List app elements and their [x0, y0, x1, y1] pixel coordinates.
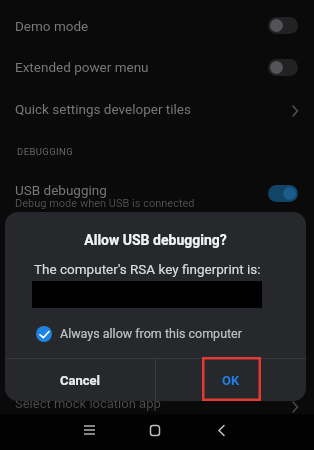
button[interactable]	[36, 326, 52, 342]
button[interactable]: Quick settings developer tiles	[15, 101, 191, 117]
staticText: Always allow from this computer	[60, 326, 242, 341]
staticText: Debug mode when USB is connected	[15, 197, 195, 210]
button[interactable]	[218, 425, 225, 436]
staticText: Cancel	[60, 373, 101, 388]
button[interactable]	[150, 425, 160, 436]
button[interactable]	[268, 185, 298, 202]
staticText: DEBUGGING	[17, 146, 74, 157]
button[interactable]: Cancel	[5, 359, 155, 401]
staticText: The computer's RSA key fingerprint is:	[34, 261, 261, 277]
staticText: OK	[222, 373, 240, 388]
staticText: Allow USB debugging?	[5, 232, 306, 248]
button[interactable]: OK	[156, 359, 306, 401]
button[interactable]	[84, 425, 95, 435]
button[interactable]	[268, 59, 298, 76]
staticText: Select mock location app	[15, 396, 161, 411]
staticText: Demo mode	[15, 18, 89, 34]
button[interactable]	[268, 17, 298, 34]
staticText: USB debugging	[15, 182, 107, 198]
staticText: Extended power menu	[15, 59, 149, 75]
